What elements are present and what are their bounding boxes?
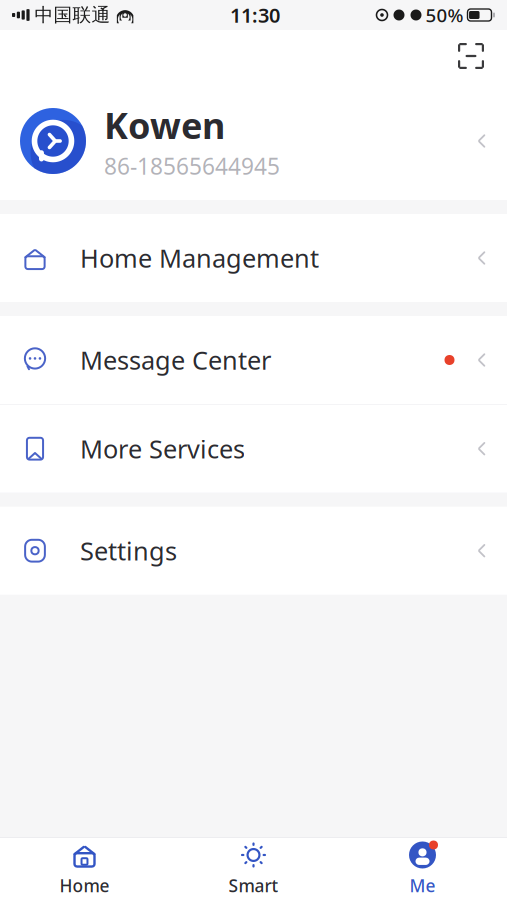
staticText: Settings	[80, 534, 177, 567]
staticText: Home	[59, 874, 109, 897]
button[interactable]: Smart	[169, 833, 338, 900]
button[interactable]: Home Management	[0, 214, 507, 302]
staticText: Smart	[228, 874, 278, 897]
button[interactable]: Scan QR code	[449, 34, 493, 78]
staticText: Me	[409, 874, 435, 897]
button[interactable]: Home	[0, 833, 169, 900]
button[interactable]: Me	[338, 833, 507, 900]
staticText: 50%	[425, 3, 463, 27]
button[interactable]: Kowen	[0, 82, 507, 200]
staticText: 中国联通	[35, 3, 111, 26]
staticText: Kowen	[104, 101, 225, 149]
staticText: 86-18565644945	[104, 151, 280, 181]
staticText: Home Management	[80, 241, 319, 275]
staticText: Message Center	[80, 343, 271, 377]
staticText: More Services	[80, 432, 245, 465]
button[interactable]: Settings	[0, 507, 507, 595]
staticText: 11:30	[230, 2, 280, 28]
button[interactable]: More Services	[0, 405, 507, 493]
button[interactable]: Message Center	[0, 316, 507, 404]
